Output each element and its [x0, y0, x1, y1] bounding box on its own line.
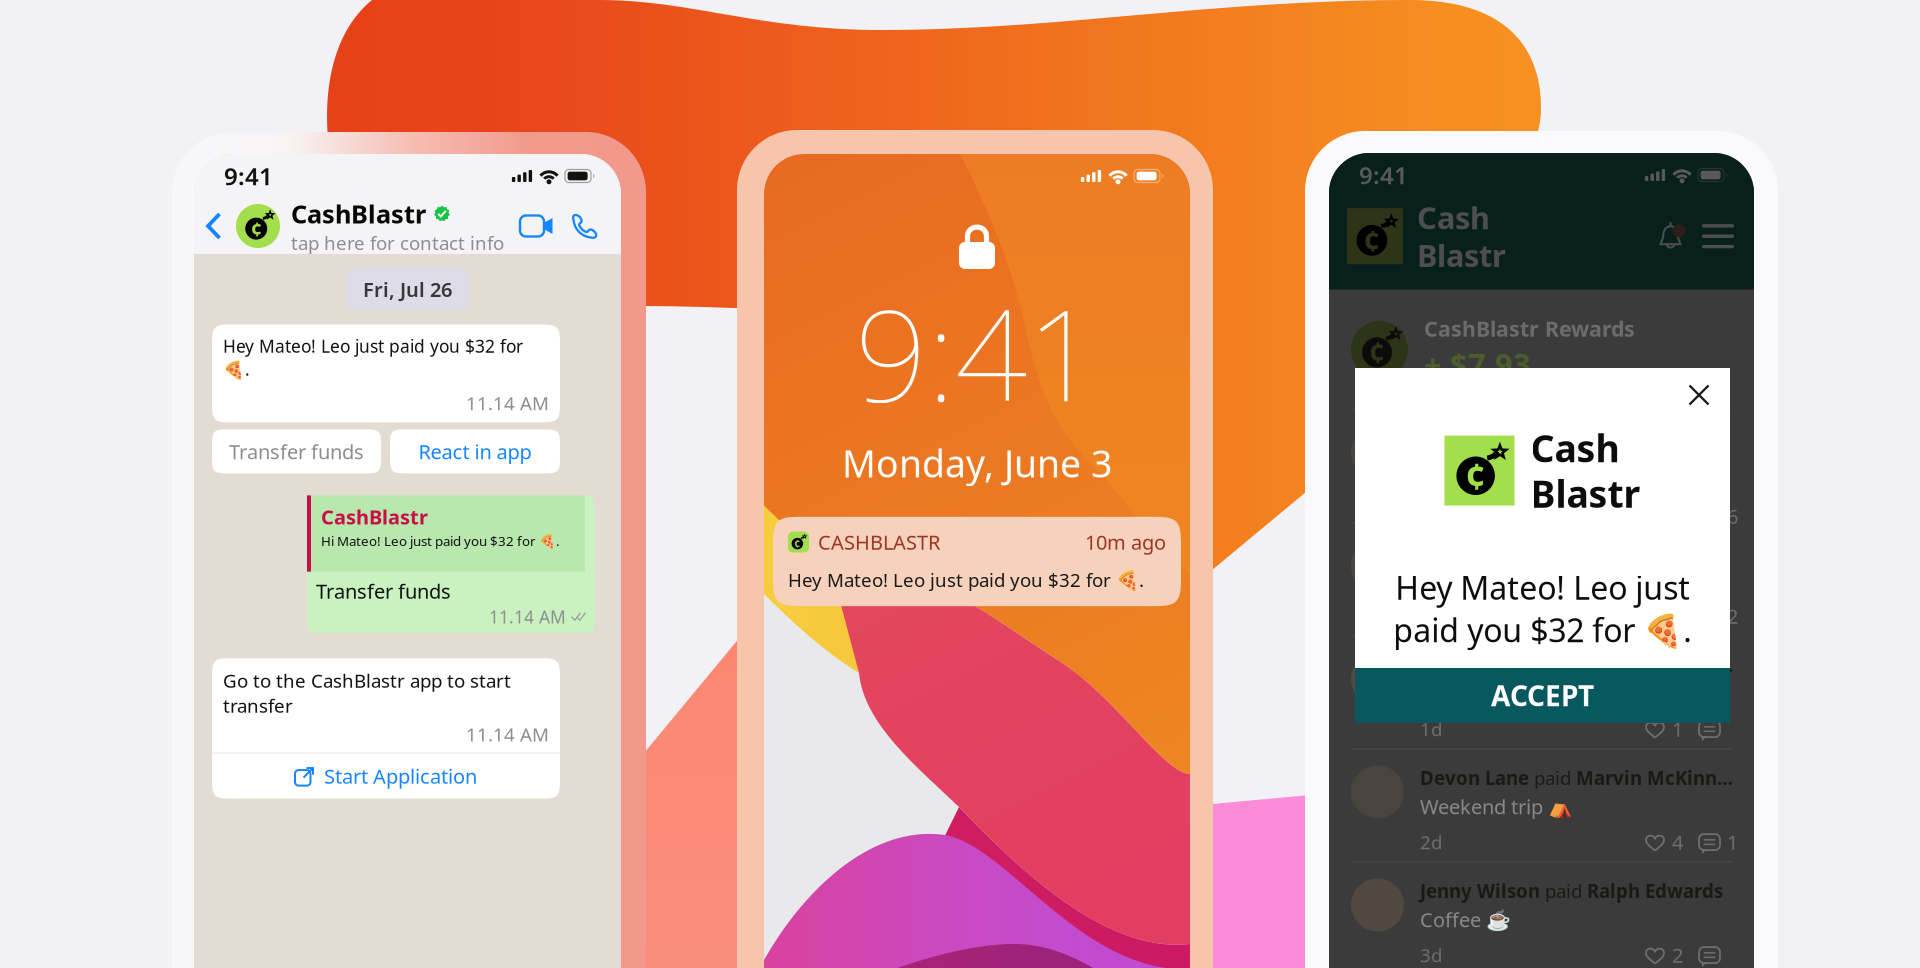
staticText: Weekend trip ⛺ [1420, 793, 1573, 820]
button[interactable]: Close [1676, 368, 1730, 414]
staticText: 3d [1420, 943, 1442, 967]
staticText: 11.14 AM [466, 391, 549, 415]
staticText: José Sanchez Guzman paid Monica Shields [1420, 539, 1734, 564]
staticText: 10m ago [1085, 529, 1166, 555]
staticText: 1d [1420, 717, 1442, 741]
staticText: ¢ [251, 215, 262, 242]
staticText: Hey Mateo! Leo just paid you $32 for 🍕. [788, 567, 1144, 592]
staticText: ACCEPT [1491, 677, 1594, 714]
staticText: Start Application [324, 763, 477, 789]
staticText: CASHBLASTR [818, 529, 940, 555]
button[interactable]: Back [194, 202, 236, 250]
staticText: Anya Addams paid Kristy Reynolds [1420, 652, 1734, 677]
staticText: 1 [1727, 829, 1738, 855]
staticText: 11.14 AM [489, 605, 566, 628]
staticText: Go to the CashBlastr app to start transf… [223, 668, 511, 718]
staticText: Monday, June 3 [842, 438, 1112, 488]
staticText: Transfer funds [316, 578, 451, 604]
staticText: Hi Mateo! Leo just paid you $32 for 🍕. [321, 532, 560, 550]
staticText: Thanks for the drinks [1420, 454, 1617, 481]
staticText: Blastr [1417, 235, 1506, 275]
staticText: 9:41 [1359, 159, 1408, 191]
staticText: ¢ [1363, 221, 1380, 260]
button[interactable]: ACCEPT [1355, 668, 1730, 723]
staticText: CashBlastr [291, 197, 426, 230]
staticText: + $7.93 [1424, 344, 1531, 384]
staticText: 11.14 AM [466, 722, 549, 747]
staticText: Fri, Jul 26 [363, 276, 452, 303]
staticText: CashBlastr Rewards [1424, 314, 1635, 343]
staticText: 4 [1672, 829, 1683, 855]
staticText: 9:41 [224, 160, 273, 192]
staticText: Coffee ☕ [1420, 906, 1511, 933]
button[interactable]: Video call [506, 203, 558, 248]
staticText: Hey Mateo! Leo just paid you $32 for 🍕. [1393, 566, 1692, 651]
staticText: 1d [1420, 604, 1442, 628]
staticText: React in app [418, 438, 531, 465]
button[interactable]: Voice call [558, 202, 604, 249]
staticText: 1 [1672, 716, 1683, 742]
staticText: ¢ [1465, 452, 1486, 500]
staticText: tap here for contact info [291, 230, 504, 255]
staticText: ¢ [1369, 334, 1385, 371]
staticText: 6 [1727, 503, 1738, 530]
staticText: ¢ [794, 536, 800, 551]
staticText: Mo' money for Monica [1420, 567, 1629, 594]
button[interactable]: Notifications [1649, 214, 1692, 258]
staticText: 2 [1727, 603, 1738, 629]
button[interactable]: Menu [1692, 216, 1744, 256]
staticText: Hey Mateo! Leo just paid you $32 for 🍕. [223, 335, 523, 381]
button[interactable]: React in app [390, 429, 560, 473]
staticText: Devon Lane paid Marvin McKinney [1420, 765, 1734, 790]
button[interactable]: Start Application [212, 754, 560, 799]
staticText: Transfer funds [229, 438, 364, 465]
staticText: 2 [1672, 942, 1683, 968]
staticText: Cash [1530, 423, 1619, 473]
staticText: 9:41 [855, 268, 1099, 436]
staticText: Cash [1417, 197, 1490, 238]
staticText: CashBlastr [321, 503, 428, 530]
staticText: Blastr [1530, 469, 1640, 518]
button[interactable]: Transfer funds [212, 429, 381, 473]
staticText: 2d [1420, 830, 1442, 854]
staticText: CashBlastr Crew paid Everyone [1420, 426, 1703, 451]
staticText: Jenny Wilson paid Ralph Edwards [1420, 878, 1723, 903]
